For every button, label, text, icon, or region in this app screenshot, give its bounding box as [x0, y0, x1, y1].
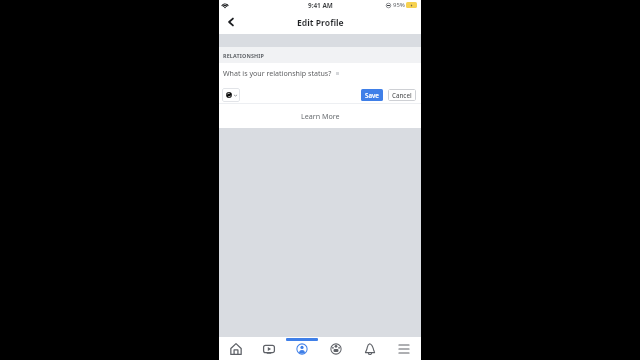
staticText: Cancel: [392, 91, 412, 99]
staticText: 9:41 AM: [308, 1, 333, 10]
staticText: RELATIONSHIP: [223, 52, 265, 59]
staticText: Edit Profile: [297, 17, 344, 29]
staticText: Save: [365, 91, 379, 99]
button[interactable]: Save: [361, 89, 383, 101]
button[interactable]: Notifications: [353, 337, 387, 360]
button[interactable]: Audience: Public: [222, 88, 240, 102]
button[interactable]: Cancel: [388, 89, 416, 101]
staticText: 95%: [393, 1, 405, 9]
button[interactable]: Home: [219, 337, 252, 360]
button[interactable]: Video: [252, 337, 285, 360]
button[interactable]: Groups: [319, 337, 353, 360]
staticText: Learn More: [301, 111, 340, 121]
button[interactable]: Back: [223, 15, 239, 31]
button[interactable]: Profile: [285, 337, 319, 360]
staticText: What is your relationship status?: [223, 68, 332, 78]
button[interactable]: Menu: [387, 337, 421, 360]
button[interactable]: Learn More: [219, 104, 421, 128]
